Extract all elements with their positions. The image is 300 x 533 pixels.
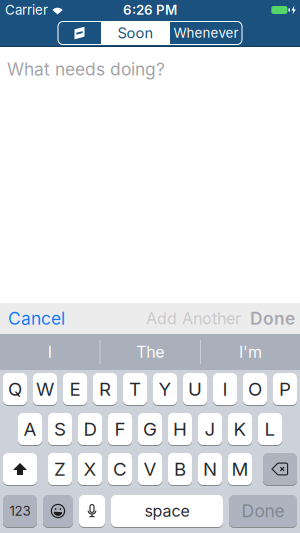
staticText: I: [48, 343, 52, 361]
staticText: N: [203, 458, 217, 480]
button[interactable]: W: [33, 373, 57, 405]
button[interactable]: I'm: [201, 334, 300, 370]
button[interactable]: R: [93, 373, 117, 405]
staticText: Whenever: [173, 25, 238, 41]
button[interactable]: M: [228, 453, 252, 485]
staticText: Y: [158, 378, 171, 400]
staticText: I'm: [239, 343, 262, 361]
staticText: Done: [250, 308, 295, 329]
staticText: C: [113, 458, 127, 480]
button[interactable]: H: [168, 413, 192, 445]
button[interactable]: The: [100, 334, 200, 370]
button[interactable]: I: [213, 373, 237, 405]
button[interactable]: O: [243, 373, 267, 405]
button[interactable]: D: [78, 413, 102, 445]
button[interactable]: J: [198, 413, 222, 445]
staticText: E: [69, 378, 80, 400]
staticText: A: [23, 418, 36, 440]
button[interactable]: Cards: [58, 21, 101, 44]
button[interactable]: G: [138, 413, 162, 445]
staticText: X: [83, 458, 96, 480]
button[interactable]: I: [0, 334, 99, 370]
staticText: M: [231, 458, 248, 480]
button[interactable]: Done: [229, 495, 297, 527]
button[interactable]: Add Another: [146, 309, 241, 328]
button[interactable]: T: [123, 373, 147, 405]
button[interactable]: E: [63, 373, 87, 405]
staticText: H: [173, 418, 187, 440]
staticText: What needs doing?: [7, 59, 165, 79]
button[interactable]: Y: [153, 373, 177, 405]
staticText: Add Another: [146, 309, 241, 328]
staticText: 123: [9, 503, 30, 519]
button[interactable]: Whenever: [170, 21, 242, 44]
staticText: D: [83, 418, 96, 440]
staticText: I: [222, 378, 227, 400]
staticText: W: [36, 378, 54, 400]
button[interactable]: V: [138, 453, 162, 485]
staticText: U: [188, 378, 202, 400]
button[interactable]: C: [108, 453, 132, 485]
button[interactable]: space: [111, 495, 223, 527]
staticText: Carrier: [5, 2, 48, 18]
button[interactable]: L: [258, 413, 282, 445]
staticText: Cancel: [8, 308, 65, 329]
button[interactable]: S: [48, 413, 72, 445]
button[interactable]: Q: [3, 373, 27, 405]
staticText: Soon: [117, 24, 153, 42]
staticText: 6:26 PM: [123, 2, 177, 18]
button[interactable]: P: [273, 373, 297, 405]
button[interactable]: N: [198, 453, 222, 485]
button[interactable]: Shift: [3, 453, 37, 485]
button[interactable]: Soon: [101, 21, 170, 44]
button[interactable]: U: [183, 373, 207, 405]
staticText: Q: [8, 378, 22, 400]
staticText: O: [248, 378, 262, 400]
staticText: V: [143, 458, 156, 480]
staticText: K: [233, 418, 246, 440]
staticText: S: [54, 418, 66, 440]
staticText: F: [114, 418, 125, 440]
button[interactable]: Numbers: [3, 495, 37, 527]
staticText: The: [136, 343, 164, 361]
staticText: G: [143, 418, 157, 440]
staticText: Z: [54, 458, 66, 480]
button[interactable]: X: [78, 453, 102, 485]
button[interactable]: Cancel: [0, 308, 65, 329]
staticText: Done: [241, 501, 284, 521]
button[interactable]: Delete: [263, 453, 297, 485]
button[interactable]: Emoji: [43, 495, 73, 527]
button[interactable]: A: [18, 413, 42, 445]
button[interactable]: F: [108, 413, 132, 445]
button[interactable]: Dictate: [79, 495, 105, 527]
staticText: L: [264, 418, 275, 440]
button[interactable]: Z: [48, 453, 72, 485]
staticText: R: [99, 378, 111, 400]
staticText: P: [279, 378, 291, 400]
staticText: space: [144, 502, 189, 520]
staticText: J: [204, 418, 215, 440]
button[interactable]: K: [228, 413, 252, 445]
staticText: B: [174, 458, 186, 480]
button[interactable]: B: [168, 453, 192, 485]
staticText: T: [129, 378, 141, 400]
button[interactable]: Done: [241, 308, 300, 329]
